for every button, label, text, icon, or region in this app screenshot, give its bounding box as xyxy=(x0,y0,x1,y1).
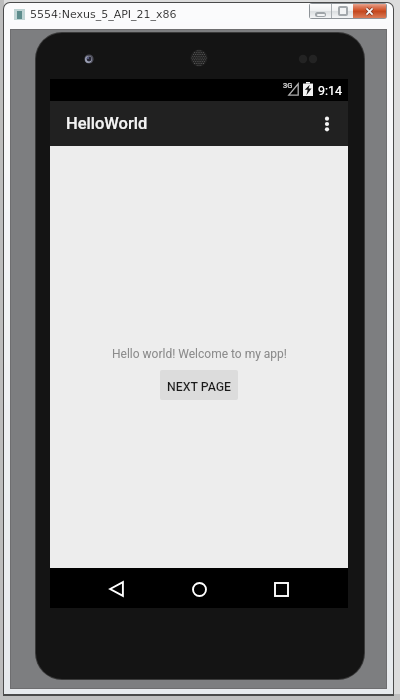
button[interactable]: NEXT PAGE xyxy=(160,370,238,400)
button[interactable]: Close xyxy=(353,4,386,18)
staticText: 3G xyxy=(283,81,293,90)
staticText: HelloWorld xyxy=(66,114,148,133)
button[interactable]: Recent apps xyxy=(240,568,323,608)
button[interactable]: Back xyxy=(75,568,157,608)
staticText: Hello world! Welcome to my app! xyxy=(112,347,287,361)
button[interactable]: Maximize xyxy=(332,4,353,18)
staticText: 9:14 xyxy=(318,83,343,98)
button[interactable]: Home xyxy=(158,568,240,608)
button[interactable]: More options xyxy=(308,101,348,146)
button[interactable]: Minimize xyxy=(310,4,331,18)
staticText: 5554:Nexus_5_API_21_x86 xyxy=(30,8,177,21)
staticText: NEXT PAGE xyxy=(167,380,232,394)
